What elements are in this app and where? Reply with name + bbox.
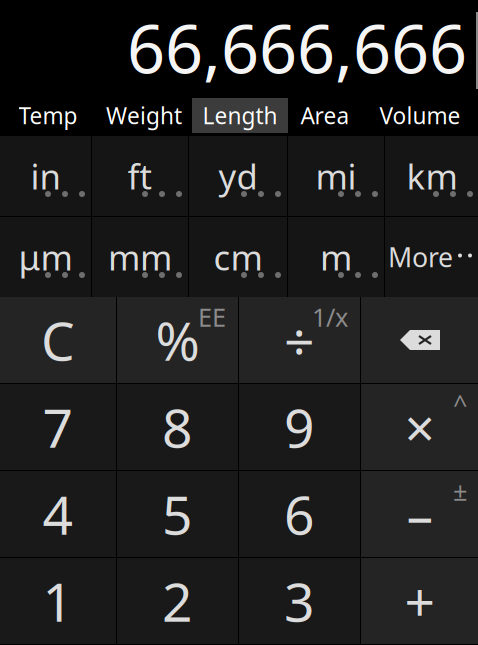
button[interactable]: 2: [117, 558, 238, 644]
staticText: Area: [300, 100, 349, 130]
button[interactable]: C: [0, 297, 116, 383]
staticText: 1: [42, 566, 73, 636]
staticText: μm: [18, 234, 72, 280]
staticText: 3: [284, 566, 315, 636]
staticText: More: [388, 239, 453, 275]
staticText: 4: [42, 479, 73, 549]
button[interactable]: Length: [192, 98, 288, 133]
button[interactable]: Weight: [96, 98, 192, 133]
staticText: 7: [42, 392, 73, 462]
button[interactable]: km: [385, 136, 478, 216]
staticText: cm: [213, 234, 262, 280]
button[interactable]: 4: [0, 471, 116, 557]
staticText: km: [406, 153, 457, 199]
staticText: 66,666,666: [127, 3, 467, 92]
button[interactable]: ft: [92, 136, 188, 216]
button[interactable]: mi: [288, 136, 384, 216]
staticText: Weight: [106, 100, 182, 130]
button[interactable]: %: [117, 297, 238, 383]
button[interactable]: ÷: [239, 297, 360, 383]
staticText: Volume: [379, 100, 460, 130]
staticText: Length: [202, 100, 277, 130]
button[interactable]: m: [288, 217, 384, 297]
staticText: 9: [284, 392, 315, 462]
staticText: 1/x: [312, 300, 348, 334]
button[interactable]: +: [361, 558, 478, 644]
staticText: ×: [404, 392, 435, 462]
button[interactable]: mm: [92, 217, 188, 297]
staticText: ft: [127, 153, 152, 199]
staticText: EE: [198, 300, 226, 334]
button[interactable]: –: [361, 471, 478, 557]
staticText: +: [404, 566, 435, 636]
staticText: ÷: [284, 305, 315, 375]
staticText: –: [406, 479, 433, 549]
staticText: 6: [284, 479, 315, 549]
button[interactable]: Temp: [0, 98, 96, 133]
staticText: 2: [162, 566, 193, 636]
staticText: 8: [162, 392, 193, 462]
staticText: ^: [453, 387, 467, 421]
button[interactable]: 9: [239, 384, 360, 470]
button[interactable]: in: [0, 136, 91, 216]
button[interactable]: cm: [189, 217, 287, 297]
button[interactable]: 3: [239, 558, 360, 644]
button[interactable]: 7: [0, 384, 116, 470]
button[interactable]: 6: [239, 471, 360, 557]
staticText: mm: [108, 234, 172, 280]
button[interactable]: 5: [117, 471, 238, 557]
staticText: yd: [218, 153, 257, 199]
staticText: %: [155, 305, 199, 375]
staticText: m: [320, 234, 352, 280]
staticText: 5: [162, 479, 193, 549]
button[interactable]: Area: [288, 98, 362, 133]
staticText: Temp: [18, 100, 77, 130]
button[interactable]: More: [385, 217, 478, 297]
button[interactable]: 8: [117, 384, 238, 470]
button[interactable]: [361, 297, 478, 383]
staticText: C: [41, 305, 75, 375]
button[interactable]: yd: [189, 136, 287, 216]
staticText: in: [30, 153, 60, 199]
staticText: mi: [315, 153, 356, 199]
button[interactable]: 1: [0, 558, 116, 644]
staticText: ±: [453, 474, 467, 508]
button[interactable]: Volume: [362, 98, 478, 133]
button[interactable]: μm: [0, 217, 91, 297]
button[interactable]: ×: [361, 384, 478, 470]
